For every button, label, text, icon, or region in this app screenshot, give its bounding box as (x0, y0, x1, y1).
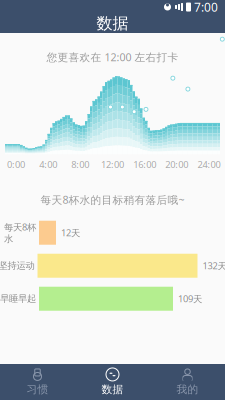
button[interactable]: 习惯 (0, 364, 75, 400)
staticText: 0:00 (7, 158, 25, 171)
button[interactable]: 数据 (75, 364, 150, 400)
staticText: 您更喜欢在 12:00 左右打卡 (46, 50, 178, 64)
staticText: 数据 (96, 14, 128, 33)
staticText: 7:00 (194, 0, 218, 15)
staticText: 132天 (202, 259, 225, 272)
staticText: 习惯 (26, 383, 48, 396)
staticText: 每天8杯水的目标稍有落后哦~ (40, 193, 184, 207)
staticText: 8:00 (71, 158, 89, 171)
staticText: 12天 (61, 226, 80, 239)
staticText: 我的 (176, 383, 198, 396)
staticText: 数据 (101, 383, 123, 396)
staticText: 24:00 (197, 158, 220, 171)
staticText: 12:00 (101, 158, 124, 171)
staticText: 16:00 (133, 158, 156, 171)
staticText: 早睡早起 (0, 293, 36, 304)
staticText: 坚持运动 (0, 260, 34, 271)
button[interactable]: 我的 (150, 364, 225, 400)
staticText: 109天 (178, 292, 202, 305)
staticText: 4:00 (39, 158, 57, 171)
staticText: 20:00 (165, 158, 188, 171)
staticText: 每天8杯水 (4, 221, 36, 245)
